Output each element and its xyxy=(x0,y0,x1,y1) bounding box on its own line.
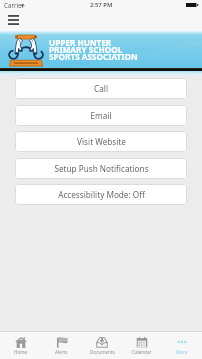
button[interactable]: Accessibility Mode: Off xyxy=(15,184,187,205)
staticText: UPPER HUNTER xyxy=(49,37,112,48)
staticText: PRIMARY SCHOOL xyxy=(49,44,123,55)
button[interactable]: Call xyxy=(15,78,187,99)
staticText: Setup Push Notifications xyxy=(54,163,149,174)
staticText: Email xyxy=(90,110,112,121)
staticText: SPORTS ASSOCIATION xyxy=(49,51,138,62)
staticText: Calendar xyxy=(132,349,152,355)
button[interactable]: Home xyxy=(0,332,41,359)
button[interactable]: Alerts xyxy=(41,332,82,359)
button[interactable]: Documents xyxy=(82,332,122,359)
staticText: 2:57 PM xyxy=(90,1,113,9)
button[interactable]: More xyxy=(162,332,202,359)
button[interactable]: Open menu xyxy=(2,10,24,29)
staticText: Documents xyxy=(90,349,115,355)
staticText: More xyxy=(176,349,188,355)
button[interactable]: Email xyxy=(15,105,187,126)
button[interactable]: Calendar xyxy=(122,332,162,359)
staticText: Accessibility Mode: Off xyxy=(58,189,145,200)
button[interactable]: Visit Website xyxy=(15,131,187,152)
staticText: Carrier xyxy=(4,1,25,9)
staticText: Visit Website xyxy=(77,136,126,147)
staticText: Call xyxy=(94,83,108,94)
staticText: Alerts xyxy=(55,349,68,355)
staticText: Home xyxy=(14,349,28,355)
button[interactable]: Setup Push Notifications xyxy=(15,158,187,179)
